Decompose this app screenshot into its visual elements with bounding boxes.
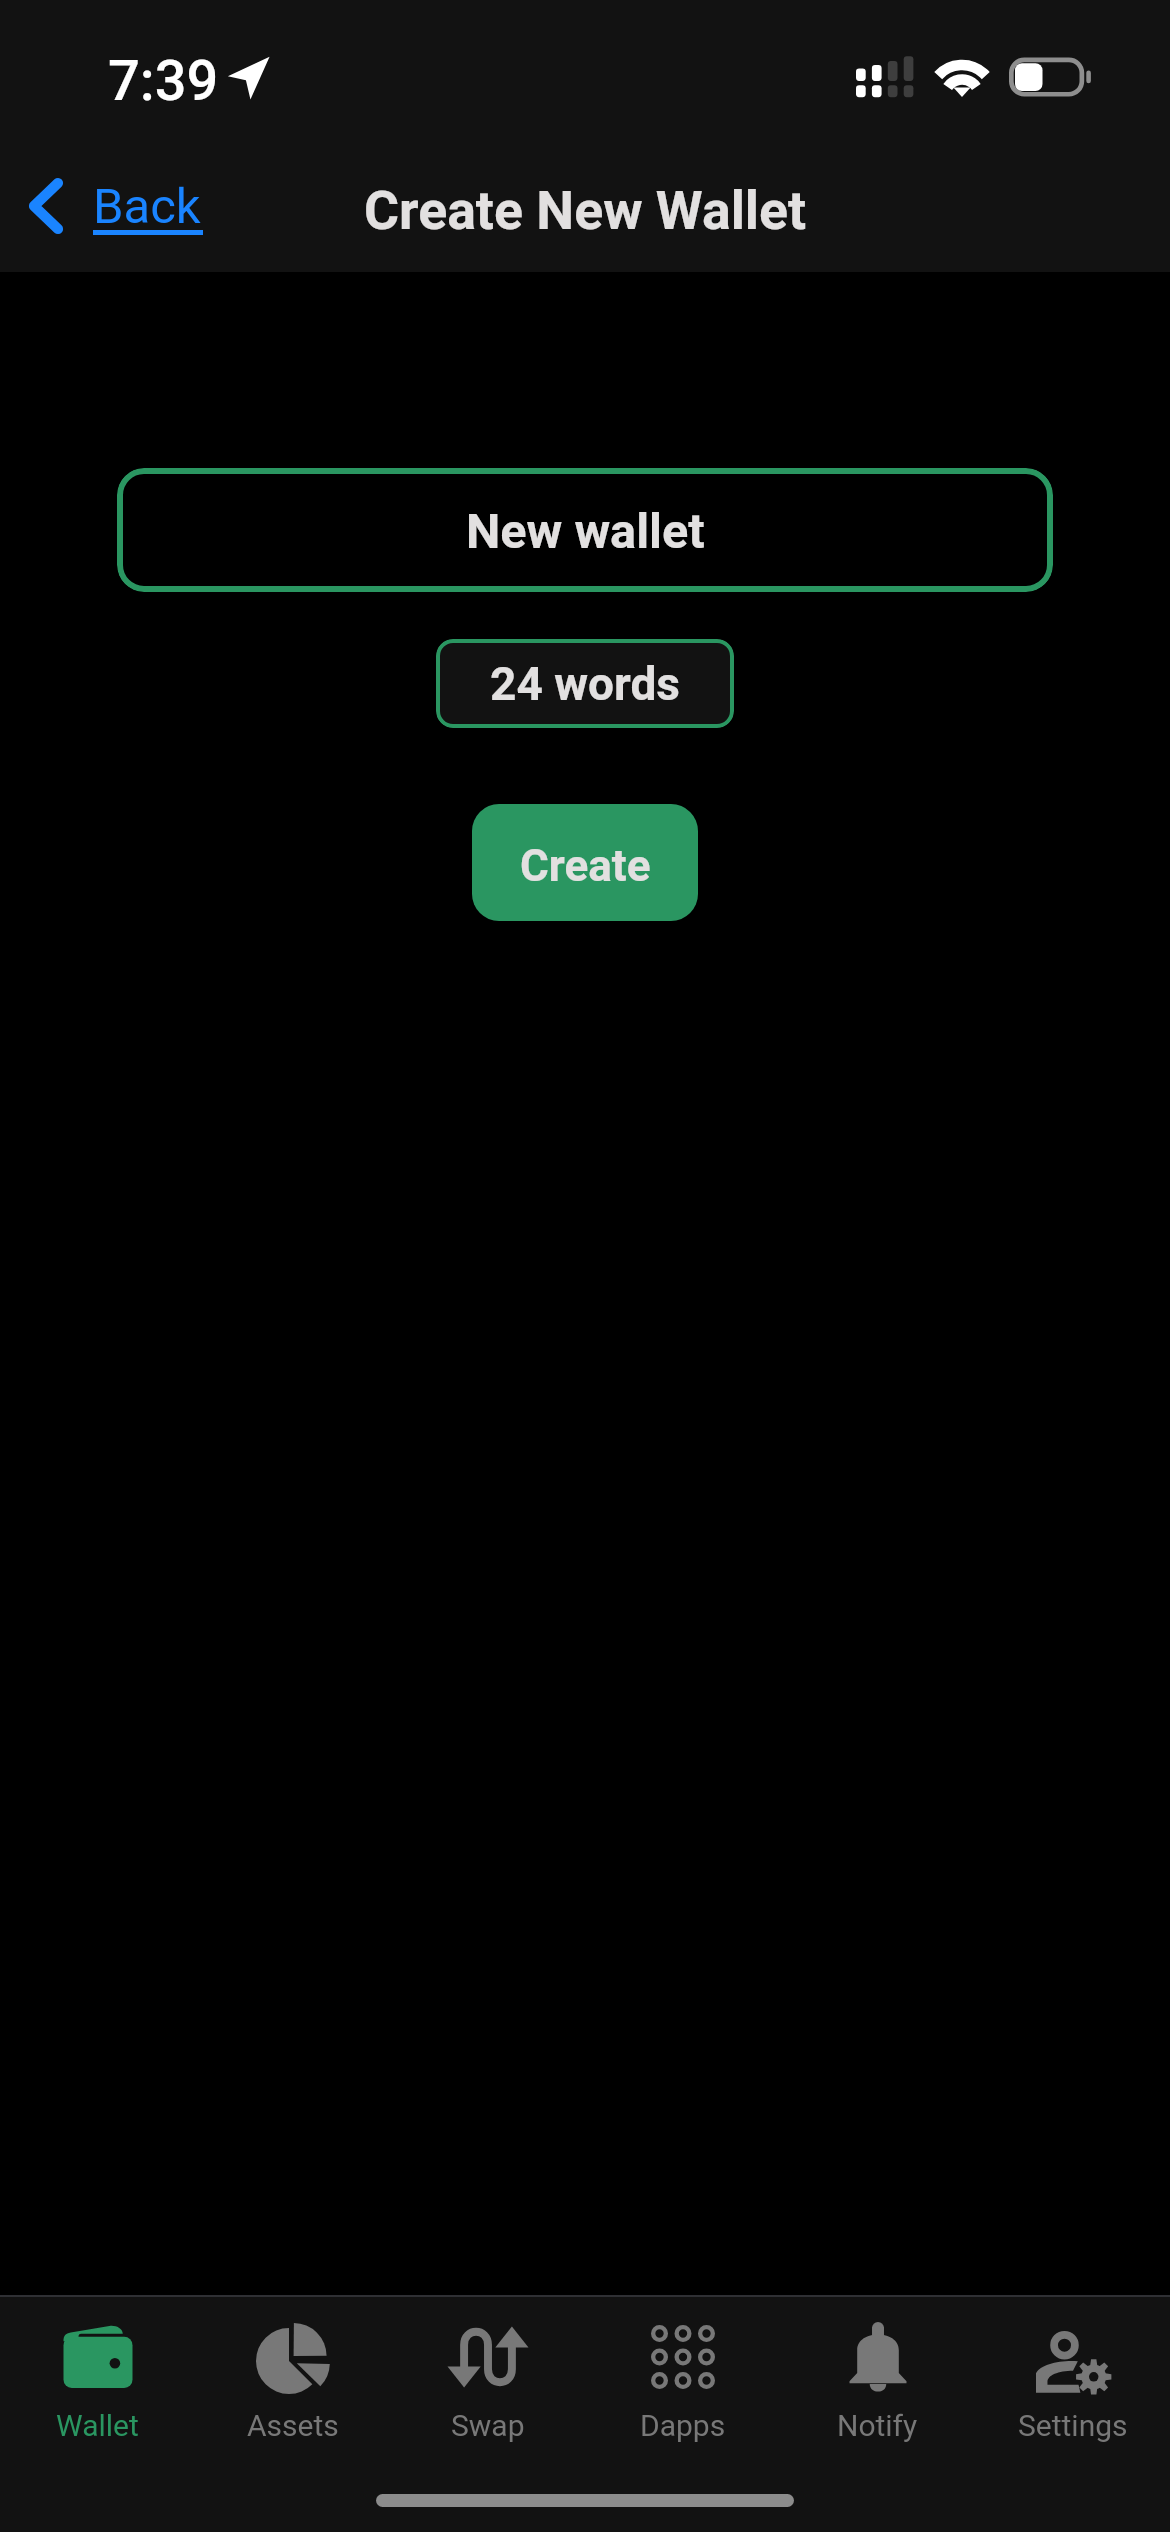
button[interactable]: 24 words [436,639,734,728]
staticText: Create [520,840,651,892]
button[interactable]: Settings [975,2321,1170,2443]
staticText: Notify [837,2408,918,2443]
staticText: Wallet [56,2408,139,2443]
button[interactable]: Swap [390,2321,585,2443]
staticText: Dapps [640,2408,726,2443]
staticText: Back [93,178,201,235]
staticText: 7:39 [108,48,219,114]
button[interactable]: Create [472,804,698,921]
button[interactable]: Back [24,173,203,239]
button[interactable]: Notify [780,2321,975,2443]
staticText: Assets [247,2408,339,2443]
button[interactable]: New wallet [117,468,1053,592]
button[interactable]: Dapps [585,2321,780,2443]
staticText: 24 words [490,657,681,711]
staticText: New wallet [466,503,705,560]
staticText: Settings [1018,2408,1128,2443]
button[interactable]: Wallet [0,2321,195,2443]
staticText: Create New Wallet [364,179,807,242]
staticText: Swap [451,2408,525,2443]
button[interactable]: Assets [195,2321,390,2443]
